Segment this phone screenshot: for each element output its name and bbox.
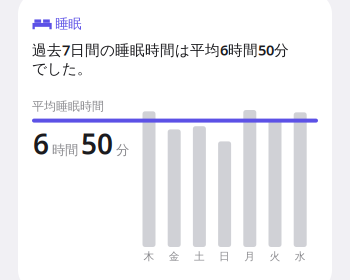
staticText: 時間 [52,142,78,158]
staticText: 分 [116,142,129,158]
staticText: 50 [81,125,113,162]
staticText: 日 [219,250,230,263]
staticText: 金 [169,250,180,263]
staticText: 睡眠 [55,15,81,32]
staticText: 月 [244,250,255,263]
button[interactable]: 睡眠 [32,15,81,32]
staticText: 土 [194,250,205,263]
staticText: 水 [295,250,306,263]
staticText: 木 [143,250,154,263]
staticText: 6 [33,125,49,162]
staticText: 平均睡眠時間 [32,99,104,114]
staticText: 火 [269,250,280,263]
staticText: 過去7日間の睡眠時間は平均6時間50分でした。 [32,40,289,78]
